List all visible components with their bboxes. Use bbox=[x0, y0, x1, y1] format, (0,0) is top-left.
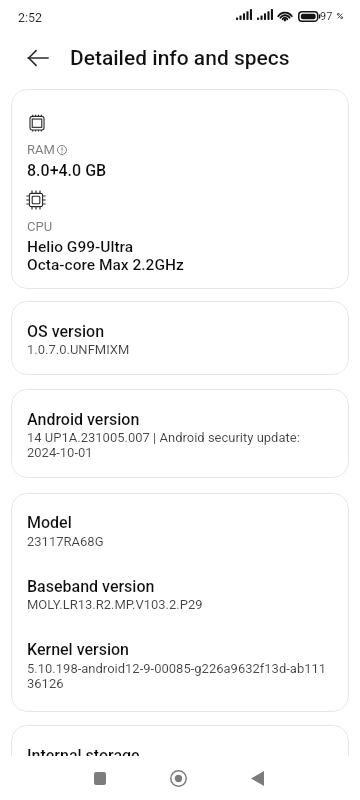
button[interactable]: Internal storage bbox=[11, 725, 349, 758]
button[interactable]: Android version bbox=[11, 389, 349, 478]
button[interactable]: Model bbox=[11, 493, 349, 712]
staticText: OS version bbox=[27, 322, 105, 341]
staticText: Baseband version bbox=[27, 577, 155, 596]
button[interactable]: OS version bbox=[11, 301, 349, 375]
staticText: Kernel version bbox=[27, 640, 130, 659]
staticText: Helio G99-Ultra Octa-core Max 2.2GHz bbox=[27, 238, 184, 274]
button[interactable]: Recent apps bbox=[76, 756, 124, 800]
staticText: 97 bbox=[320, 10, 333, 23]
staticText: 2:52 bbox=[18, 10, 43, 25]
staticText: 8.0+4.0 GB bbox=[27, 161, 107, 180]
staticText: Android version bbox=[27, 410, 140, 429]
button[interactable]: RAM bbox=[11, 89, 349, 289]
staticText: Internal storage bbox=[27, 746, 140, 758]
button[interactable]: Home bbox=[154, 756, 202, 800]
staticText: Model bbox=[27, 513, 72, 532]
staticText: MOLY.LR13.R2.MP.V103.2.P29 bbox=[27, 597, 333, 612]
staticText: RAM bbox=[27, 142, 55, 157]
button[interactable]: Back bbox=[233, 756, 281, 800]
staticText: CPU bbox=[27, 219, 53, 234]
staticText: 1.0.7.0.UNFMIXM bbox=[27, 342, 333, 357]
staticText: Detailed info and specs bbox=[70, 46, 290, 71]
staticText: 14 UP1A.231005.007 | Android security up… bbox=[27, 430, 333, 460]
staticText: 23117RA68G bbox=[27, 534, 333, 549]
staticText: 5.10.198-android12-9-00085-g226a9632f13d… bbox=[27, 661, 333, 691]
button[interactable]: Back bbox=[16, 36, 60, 80]
